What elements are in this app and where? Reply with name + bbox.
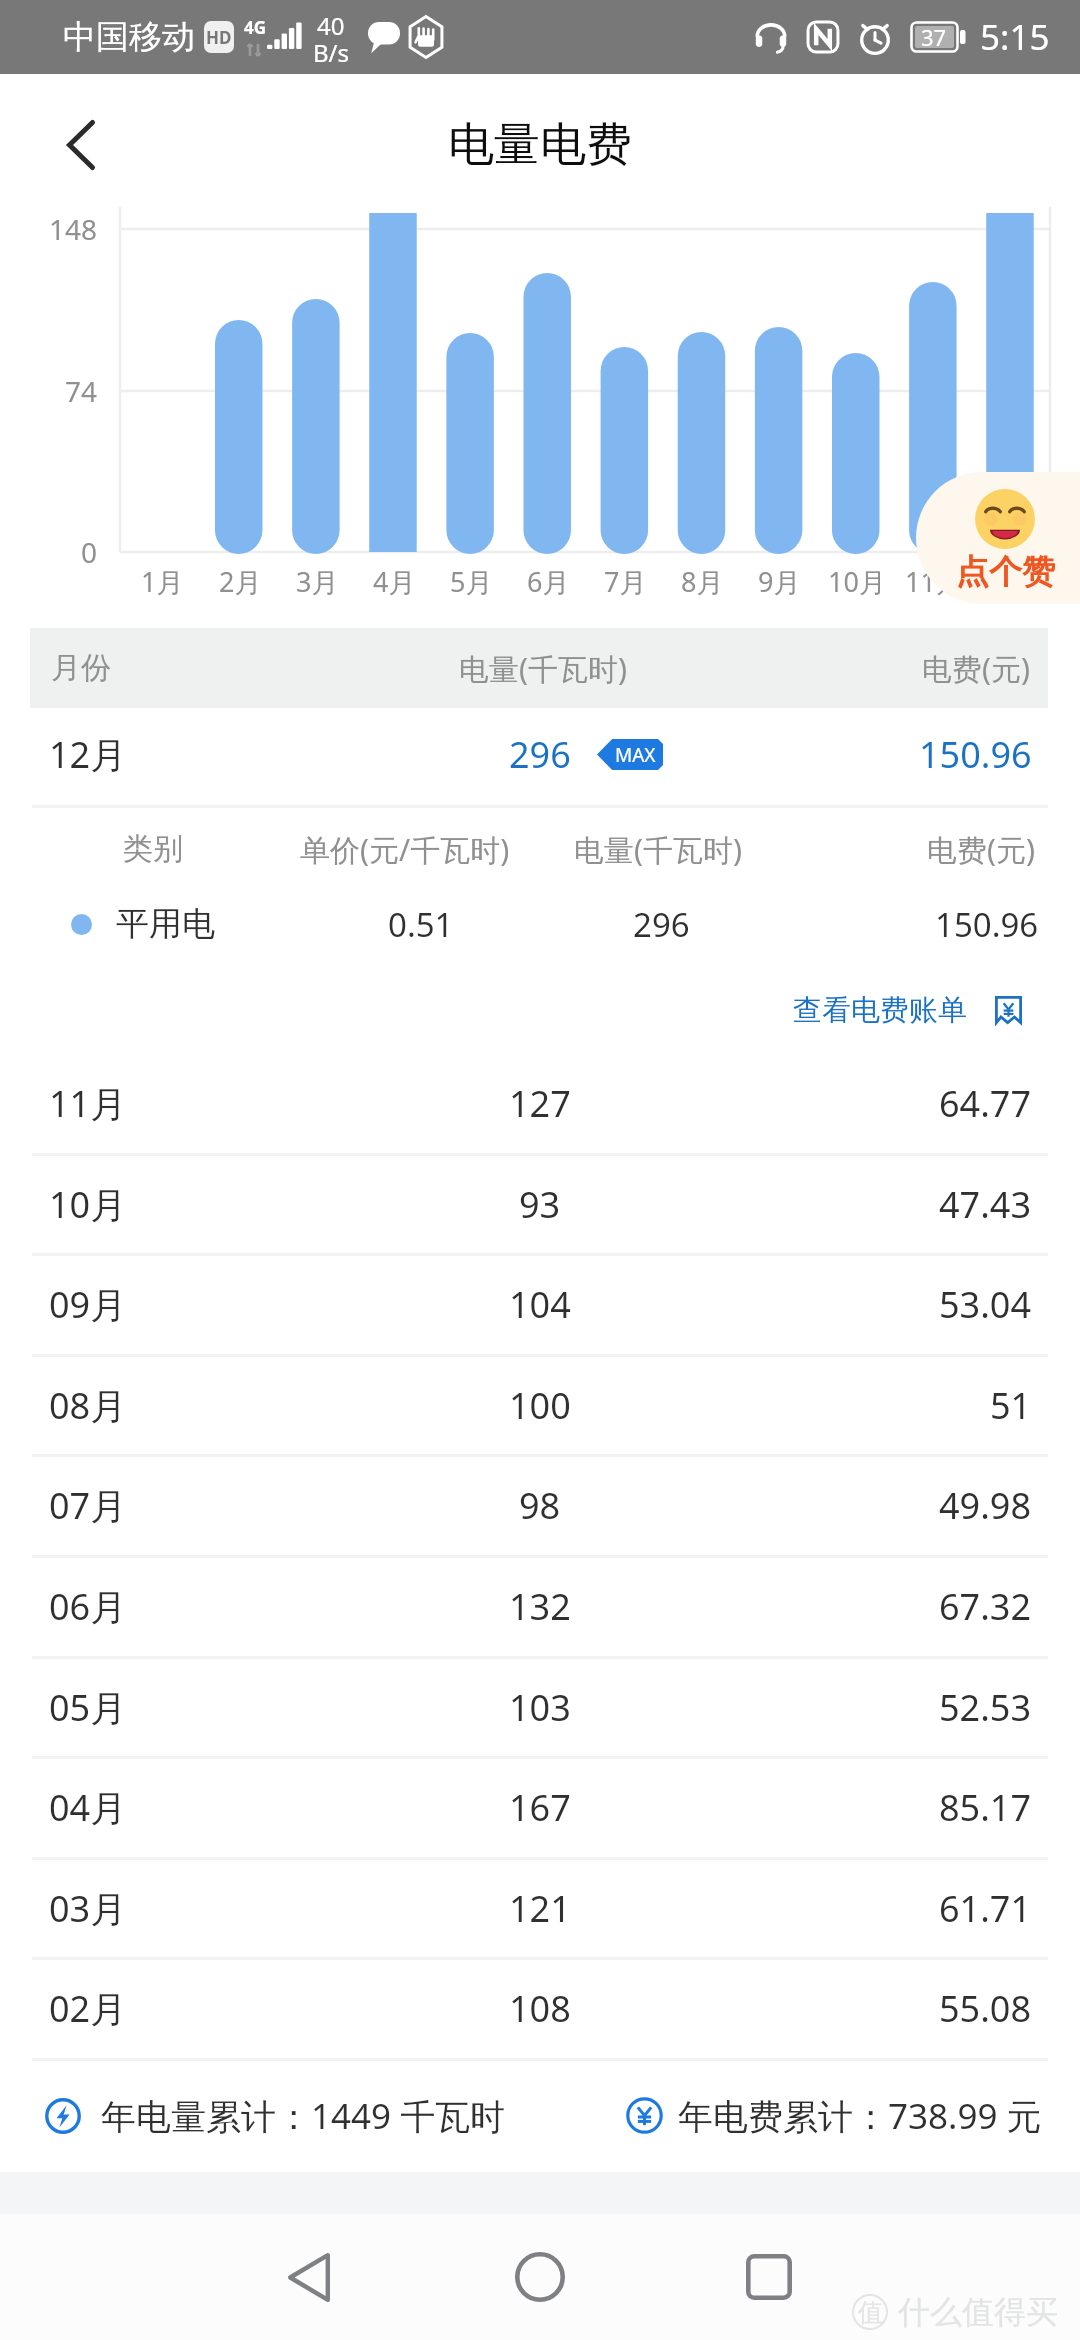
staticText: 05月 (49, 1683, 127, 1732)
button[interactable]: 03月 (0, 1858, 1080, 1959)
staticText: 12月 (982, 563, 1040, 600)
staticText: 132 (509, 1582, 571, 1631)
staticText: 98 (519, 1481, 561, 1530)
staticText: 什么值得买 (898, 2292, 1058, 2332)
staticText: 296 (509, 730, 571, 779)
button[interactable]: 09月 (0, 1254, 1080, 1355)
button[interactable]: 主屏幕 (480, 2214, 600, 2340)
staticText: 7月 (604, 563, 647, 600)
staticText: 4G (244, 16, 267, 39)
staticText: 电量(千瓦时) (574, 829, 742, 870)
button[interactable]: 07月 (0, 1455, 1080, 1556)
staticText: 52.53 (939, 1683, 1032, 1732)
staticText: 年电费累计：738.99 元 (678, 2092, 1042, 2140)
staticText: 121 (509, 1884, 571, 1933)
staticText: 67.32 (939, 1582, 1032, 1631)
staticText: 1月 (141, 563, 184, 600)
button[interactable]: 04月 (0, 1757, 1080, 1858)
button[interactable]: 05月 (0, 1657, 1080, 1758)
button[interactable]: 12月 (0, 708, 1080, 800)
staticText: 53.04 (939, 1280, 1032, 1329)
button[interactable]: 查看电费账单 (781, 972, 1036, 1048)
staticText: 04月 (49, 1783, 127, 1832)
staticText: 10月 (828, 563, 886, 600)
button[interactable]: 10月 (0, 1154, 1080, 1255)
staticText: 电量(千瓦时) (459, 648, 627, 689)
staticText: 电费(元) (927, 829, 1035, 870)
button[interactable]: 11月 (0, 1053, 1080, 1154)
staticText: 值 (858, 2297, 883, 2328)
staticText: 03月 (49, 1884, 127, 1933)
staticText: 07月 (49, 1481, 127, 1530)
staticText: 11月 (905, 563, 963, 600)
staticText: 9月 (758, 563, 801, 600)
button[interactable]: 02月 (0, 1958, 1080, 2059)
staticText: 点个赞 (956, 551, 1055, 589)
staticText: 37 (921, 22, 947, 52)
staticText: 103 (509, 1683, 571, 1732)
staticText: 104 (509, 1280, 571, 1329)
staticText: 127 (509, 1079, 571, 1128)
staticText: MAX (615, 742, 656, 768)
staticText: 08月 (49, 1381, 127, 1430)
staticText: HD (206, 26, 232, 49)
staticText: 2月 (219, 563, 262, 600)
staticText: 100 (509, 1381, 571, 1430)
staticText: 49.98 (939, 1481, 1032, 1530)
staticText: 平用电 (116, 903, 215, 945)
staticText: 单价(元/千瓦时) (300, 829, 510, 870)
staticText: 4月 (373, 563, 416, 600)
button[interactable]: 08月 (0, 1355, 1080, 1456)
staticText: 64.77 (939, 1079, 1032, 1128)
staticText: 3月 (296, 563, 339, 600)
staticText: 11月 (49, 1079, 127, 1128)
staticText: 108 (509, 1984, 571, 2033)
button[interactable]: 06月 (0, 1556, 1080, 1657)
staticText: 74 (65, 372, 98, 410)
staticText: 5:15 (980, 13, 1050, 61)
staticText: 148 (49, 210, 98, 248)
staticText: 6月 (527, 563, 570, 600)
staticText: 电费(元) (922, 648, 1030, 689)
staticText: 51 (990, 1381, 1032, 1430)
staticText: 55.08 (939, 1984, 1032, 2033)
staticText: 12月 (49, 730, 127, 779)
button[interactable]: 返回 (249, 2214, 369, 2340)
staticText: 8月 (681, 563, 724, 600)
staticText: 40 (317, 9, 345, 42)
staticText: 02月 (49, 1984, 127, 2033)
staticText: 61.71 (939, 1884, 1032, 1933)
staticText: 类别 (123, 830, 183, 868)
staticText: 09月 (49, 1280, 127, 1329)
staticText: 0 (81, 533, 98, 571)
staticText: 5月 (450, 563, 493, 600)
staticText: 167 (509, 1783, 571, 1832)
staticText: 年电量累计：1449 千瓦时 (101, 2092, 506, 2140)
staticText: B/s (313, 36, 350, 69)
staticText: 06月 (49, 1582, 127, 1631)
staticText: 10月 (49, 1180, 127, 1229)
staticText: 0.51 (388, 902, 454, 947)
staticText: 月份 (51, 649, 111, 687)
button[interactable]: 返回 (40, 93, 122, 197)
staticText: 296 (633, 902, 690, 947)
staticText: 47.43 (939, 1180, 1032, 1229)
staticText: 85.17 (939, 1783, 1032, 1832)
staticText: 150.96 (919, 730, 1032, 779)
staticText: 电量电费 (448, 116, 632, 174)
staticText: 查看电费账单 (793, 992, 967, 1029)
staticText: 中国移动 (63, 16, 195, 58)
button[interactable]: 点个赞 (916, 472, 1080, 604)
staticText: 93 (519, 1180, 561, 1229)
staticText: 150.96 (935, 902, 1039, 947)
button[interactable]: 最近任务 (709, 2214, 829, 2340)
